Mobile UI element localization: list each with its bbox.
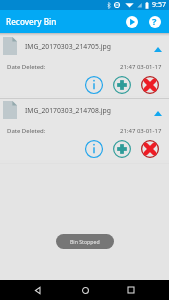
staticText: Bin Stopped	[70, 238, 100, 245]
button[interactable]: Start	[122, 12, 141, 31]
staticText: Recovery Bin	[6, 16, 57, 27]
button[interactable]: IMG_20170303_214708.jpg	[0, 97, 169, 123]
button[interactable]: Restore	[112, 139, 131, 158]
button[interactable]: Info	[84, 75, 103, 94]
staticText: IMG_20170303_214705.jpg	[25, 42, 111, 51]
button[interactable]: Help	[145, 12, 164, 31]
button[interactable]: Recents	[121, 280, 141, 300]
button[interactable]: Info	[84, 139, 103, 158]
staticText: 9:57	[152, 0, 166, 10]
button[interactable]: IMG_20170303_214705.jpg	[0, 33, 169, 59]
staticText: IMG_20170303_214708.jpg	[25, 106, 111, 115]
button[interactable]: Collapse	[151, 103, 165, 117]
button[interactable]: Bin Stopped	[56, 234, 114, 249]
staticText: ?	[152, 15, 157, 28]
staticText: 21:47 03-01-17	[120, 63, 162, 71]
button[interactable]: Delete	[140, 75, 159, 94]
button[interactable]: Delete	[140, 139, 159, 158]
staticText: Date Deleted:	[7, 127, 46, 135]
button[interactable]: Home	[75, 280, 95, 300]
staticText: 21:47 03-01-17	[120, 127, 162, 135]
staticText: Date Deleted:	[7, 63, 46, 71]
button[interactable]: Back	[27, 280, 47, 300]
button[interactable]: Collapse	[151, 39, 165, 53]
button[interactable]: Restore	[112, 75, 131, 94]
